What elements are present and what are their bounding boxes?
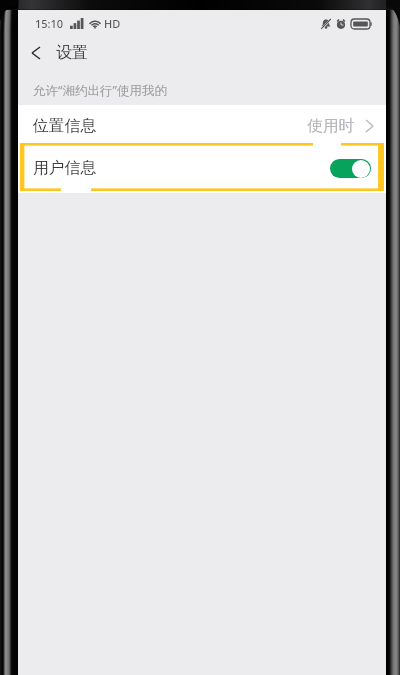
button[interactable]: 位置信息 bbox=[18, 105, 386, 147]
staticText: 用户信息 bbox=[33, 158, 97, 178]
staticText: 使用时 bbox=[307, 116, 355, 136]
button[interactable]: Toggle user information bbox=[330, 159, 371, 178]
button[interactable]: Back bbox=[26, 40, 46, 66]
button[interactable]: 用户信息 bbox=[18, 147, 386, 189]
staticText: HD bbox=[104, 16, 121, 31]
staticText: 设置 bbox=[56, 43, 88, 63]
staticText: 允许“湘约出行”使用我的 bbox=[33, 82, 167, 99]
staticText: 位置信息 bbox=[33, 116, 97, 136]
staticText: 15:10 bbox=[35, 16, 64, 31]
